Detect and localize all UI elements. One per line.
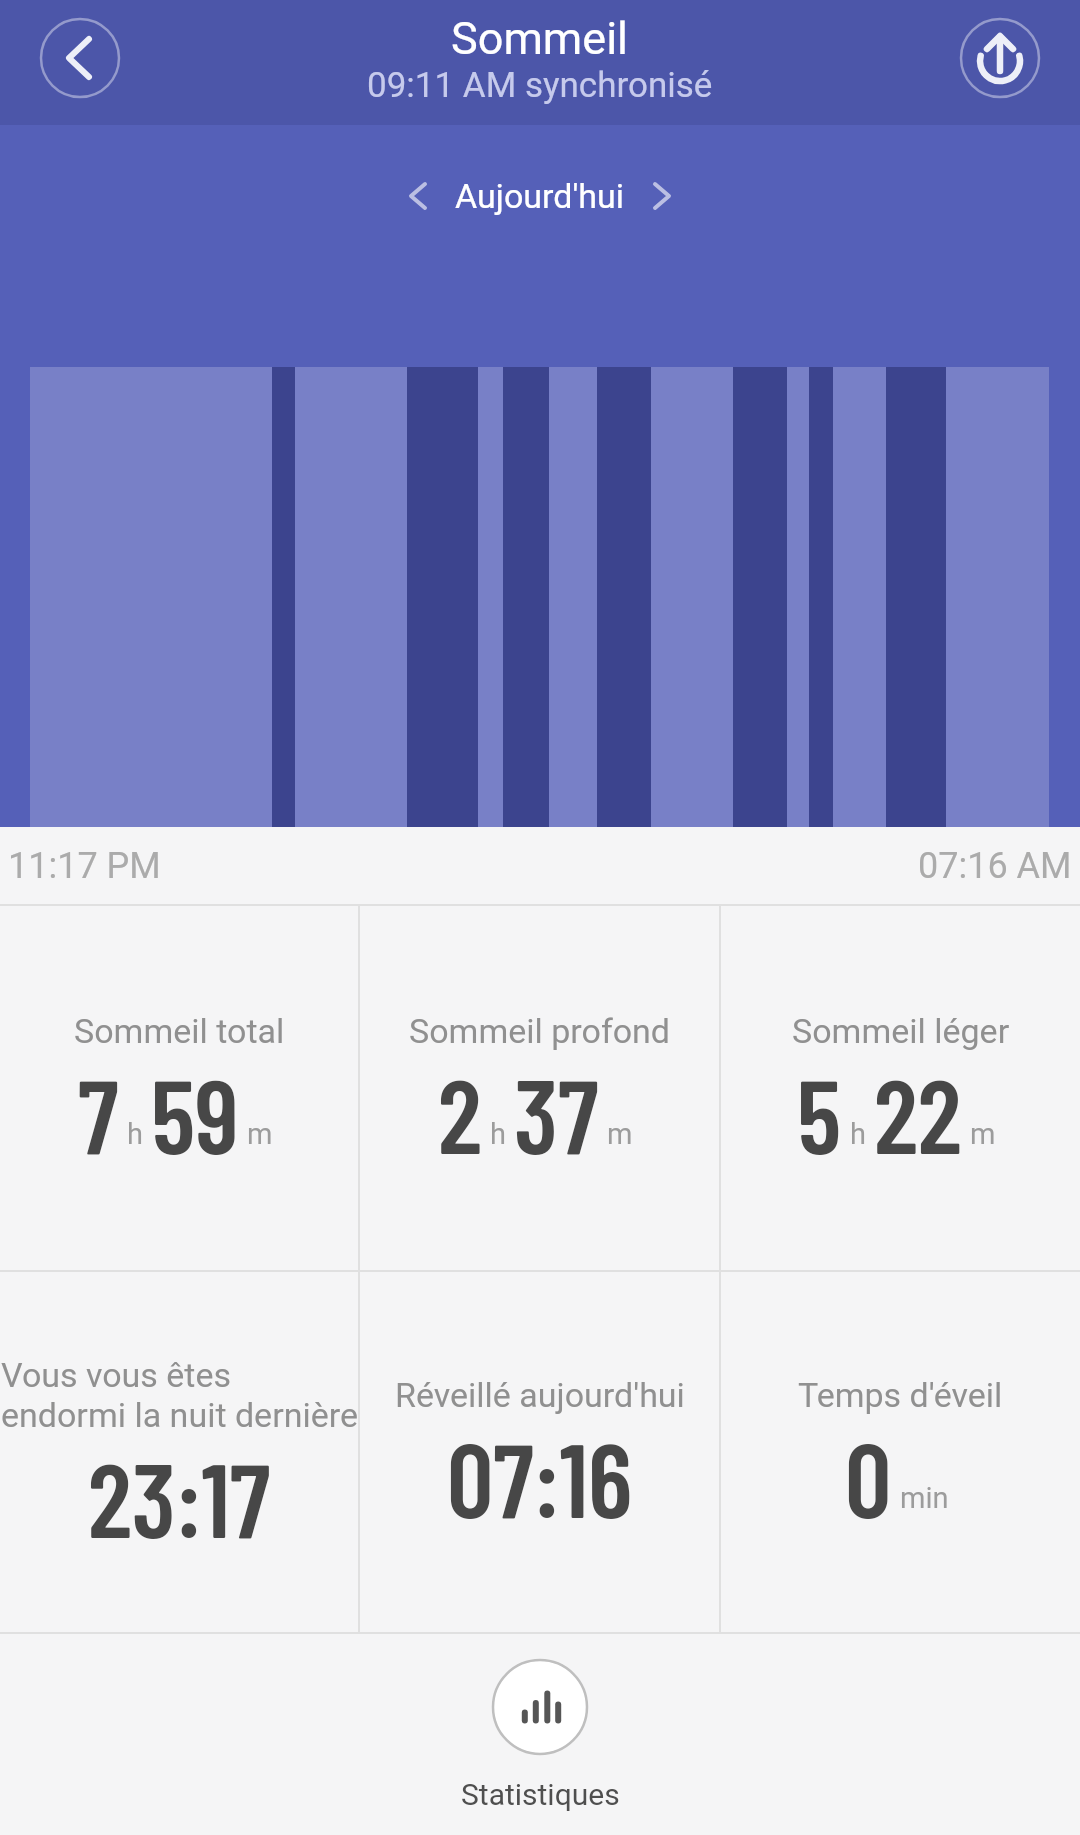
button[interactable]: Aujourd'hui (409, 176, 671, 216)
button[interactable]: Sommeil profond (360, 906, 719, 1270)
staticText: Sommeil (451, 12, 629, 65)
staticText: m (970, 1117, 996, 1151)
staticText: 2 (438, 1051, 482, 1175)
staticText: Vous vous êtes endormi la nuit dernière (1, 1355, 358, 1435)
button[interactable]: Vous vous êtes endormi la nuit dernière (0, 1272, 358, 1632)
staticText: Temps d'éveil (798, 1375, 1003, 1415)
staticText: m (247, 1117, 273, 1151)
staticText: 09:11 AM synchronisé (367, 65, 713, 106)
staticText: Sommeil total (74, 1011, 285, 1051)
button[interactable]: Sommeil léger (721, 906, 1080, 1270)
staticText: Sommeil profond (409, 1011, 671, 1051)
staticText: 0 (845, 1415, 892, 1539)
button[interactable]: Réveillé aujourd'hui (360, 1272, 719, 1632)
staticText: Sommeil léger (792, 1011, 1010, 1051)
staticText: 59 (151, 1051, 239, 1175)
staticText: min (900, 1481, 949, 1515)
staticText: 11:17 PM (8, 845, 161, 887)
button[interactable] (38, 21, 122, 105)
staticText: 7 (78, 1051, 119, 1175)
staticText: m (607, 1117, 633, 1151)
staticText: h (127, 1117, 143, 1151)
button[interactable]: Sommeil total (0, 906, 358, 1270)
staticText: h (850, 1117, 866, 1151)
staticText: Réveillé aujourd'hui (395, 1375, 685, 1415)
staticText: 23:17 (88, 1435, 271, 1559)
staticText: 22 (874, 1051, 962, 1175)
staticText: 07:16 AM (918, 845, 1072, 887)
staticText: 07:16 (447, 1415, 633, 1539)
staticText: 37 (514, 1051, 599, 1175)
staticText: h (490, 1117, 506, 1151)
button[interactable] (492, 1659, 588, 1755)
button[interactable]: Temps d'éveil (721, 1272, 1080, 1632)
staticText: Statistiques (461, 1777, 620, 1812)
staticText: 5 (797, 1051, 842, 1175)
button[interactable] (958, 21, 1042, 105)
staticText: Aujourd'hui (455, 176, 625, 216)
